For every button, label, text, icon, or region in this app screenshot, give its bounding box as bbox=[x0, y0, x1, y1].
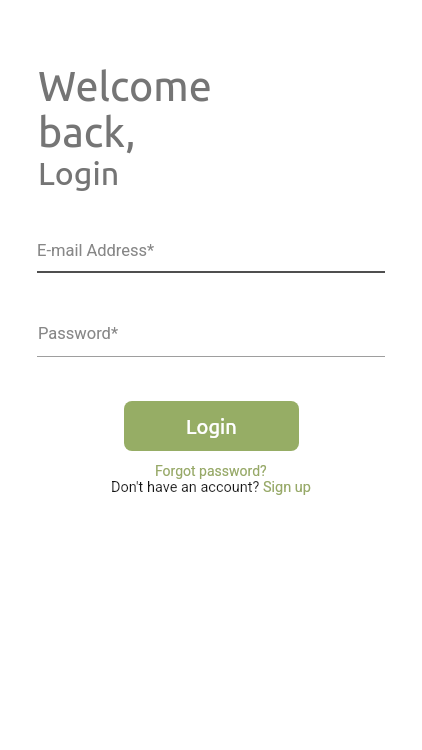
button[interactable]: Login bbox=[124, 401, 299, 451]
button[interactable]: E-mail Address* bbox=[0, 241, 422, 273]
staticText: E-mail Address* bbox=[37, 241, 155, 260]
staticText: Welcome back, bbox=[38, 63, 212, 155]
staticText: Password* bbox=[38, 324, 118, 343]
button[interactable]: Don't have an account? Sign up bbox=[111, 479, 311, 496]
staticText: Login bbox=[186, 415, 237, 437]
button[interactable]: Forgot password? bbox=[155, 463, 267, 479]
staticText: Login bbox=[38, 155, 120, 191]
button[interactable]: Password* bbox=[0, 324, 422, 357]
